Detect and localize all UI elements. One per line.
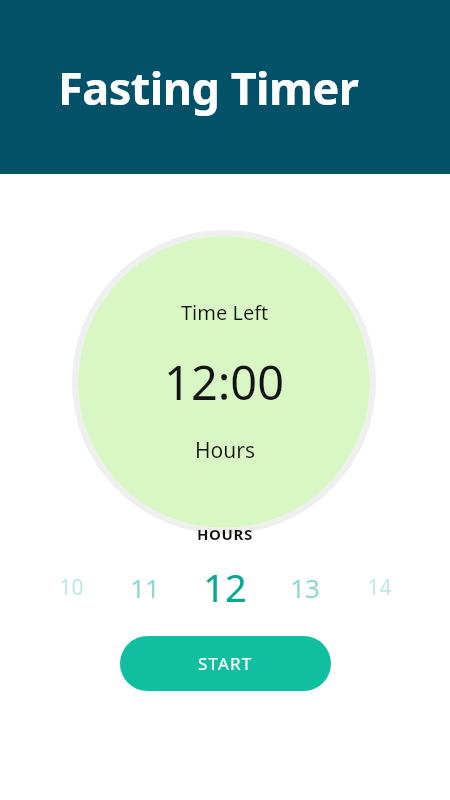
staticText: START xyxy=(198,652,253,675)
staticText: HOURS xyxy=(197,524,253,544)
staticText: 11 xyxy=(130,570,160,605)
button[interactable]: Time Left xyxy=(78,236,370,528)
button[interactable]: 14 xyxy=(343,561,415,613)
staticText: 12:00 xyxy=(164,350,285,414)
button[interactable]: 10 xyxy=(35,561,107,613)
button[interactable]: 13 xyxy=(267,561,343,613)
staticText: 13 xyxy=(290,570,320,605)
button[interactable]: START xyxy=(120,636,331,691)
button[interactable]: 12 xyxy=(183,561,267,613)
staticText: 12 xyxy=(203,561,247,613)
staticText: Time Left xyxy=(181,299,269,326)
staticText: Fasting Timer xyxy=(58,57,359,118)
staticText: 14 xyxy=(367,573,392,602)
staticText: 10 xyxy=(59,573,84,602)
staticText: Hours xyxy=(195,436,255,465)
button[interactable]: 11 xyxy=(107,561,183,613)
